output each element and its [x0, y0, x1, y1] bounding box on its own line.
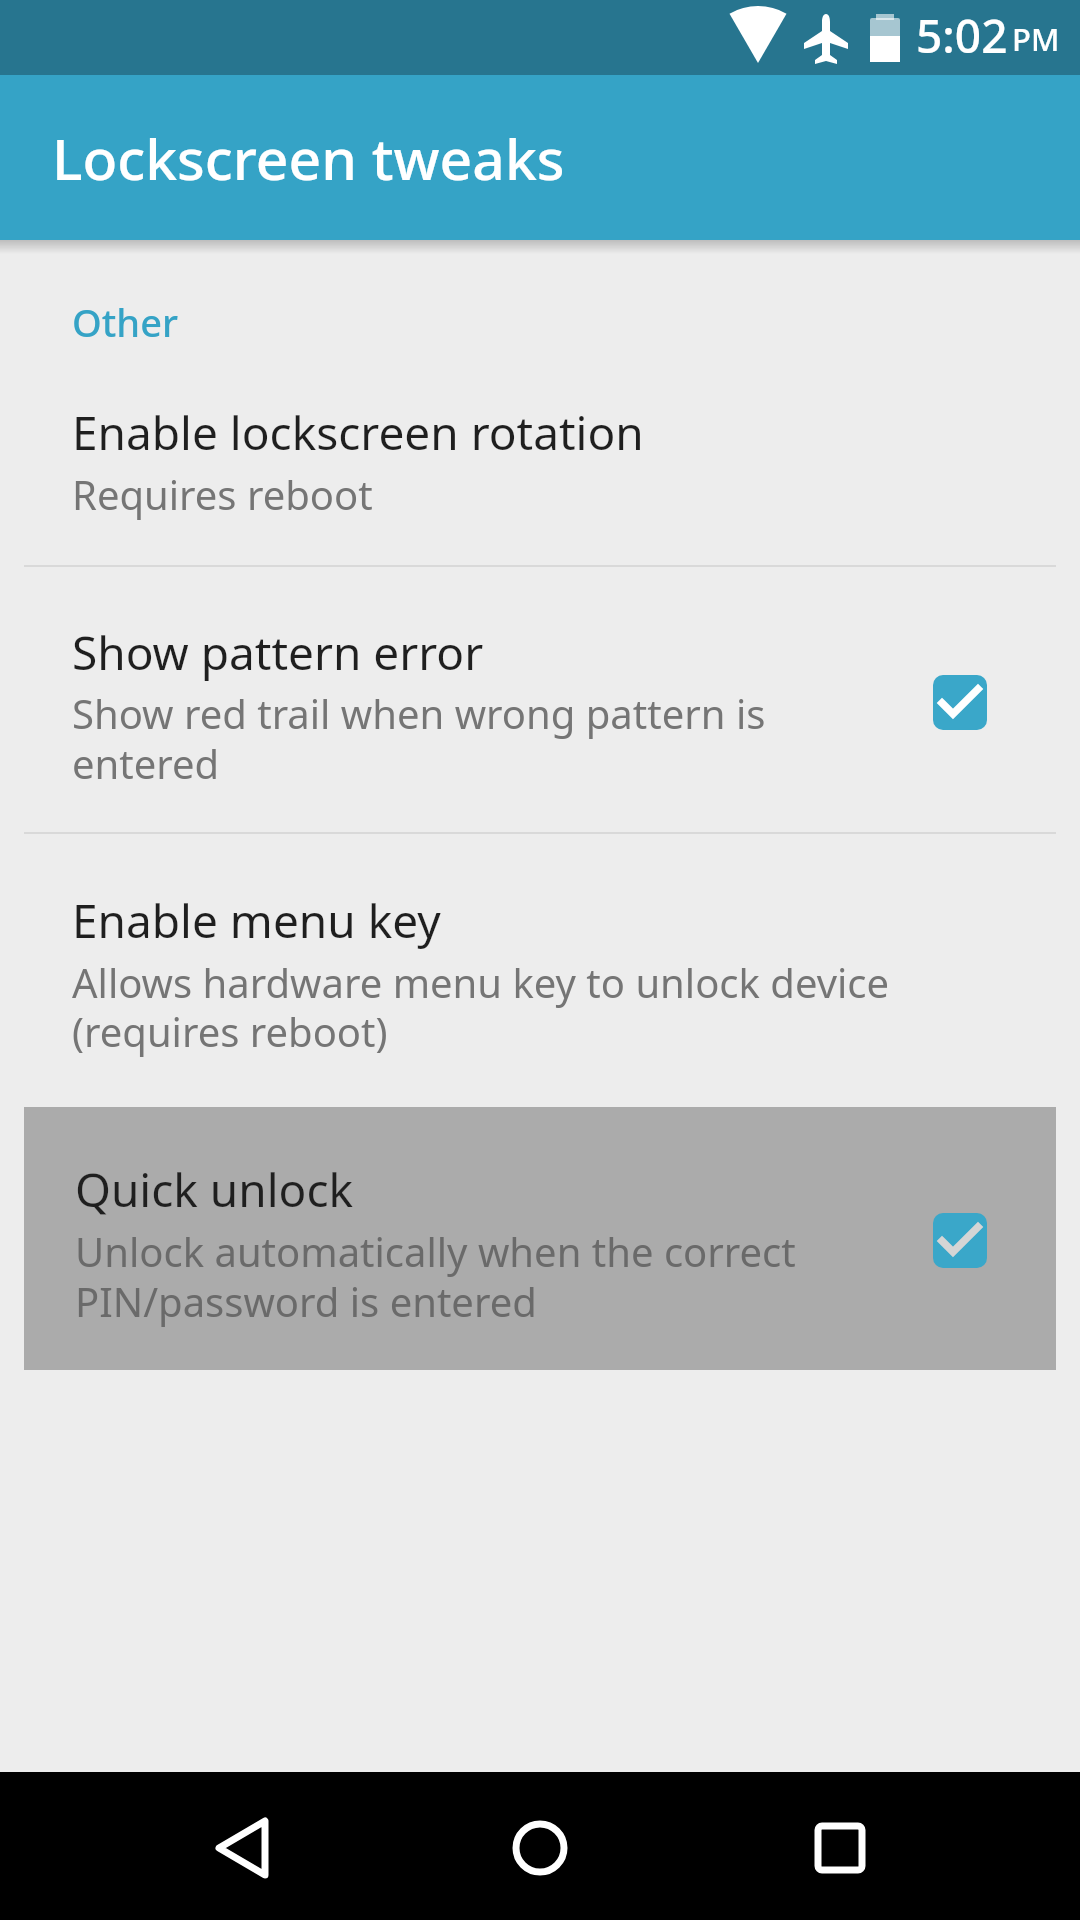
staticText: Show red trail when wrong pattern is [72, 686, 766, 740]
staticText: entered [72, 736, 220, 790]
button[interactable] [814, 1822, 866, 1874]
staticText: Show pattern error [72, 621, 484, 684]
button[interactable] [512, 1820, 568, 1876]
staticText: PM [1012, 18, 1060, 60]
staticText: Allows hardware menu key to unlock devic… [72, 955, 890, 1009]
button[interactable] [24, 1107, 1056, 1370]
staticText: (requires reboot) [72, 1004, 388, 1058]
staticText: Requires reboot [72, 467, 373, 521]
staticText: 5:02 [916, 4, 1008, 67]
staticText: Unlock automatically when the correct [75, 1224, 796, 1278]
staticText: Quick unlock [75, 1158, 354, 1221]
button[interactable] [215, 1818, 271, 1878]
staticText: Other [72, 296, 179, 348]
staticText: Enable menu key [72, 889, 441, 952]
staticText: Lockscreen tweaks [52, 119, 565, 197]
button[interactable] [0, 834, 1080, 1100]
button[interactable]: Lockscreen tweaks [0, 75, 1080, 240]
staticText: Enable lockscreen rotation [72, 401, 644, 464]
button[interactable] [0, 567, 1080, 833]
button[interactable] [0, 366, 1080, 566]
staticText: PIN/password is entered [75, 1274, 537, 1328]
